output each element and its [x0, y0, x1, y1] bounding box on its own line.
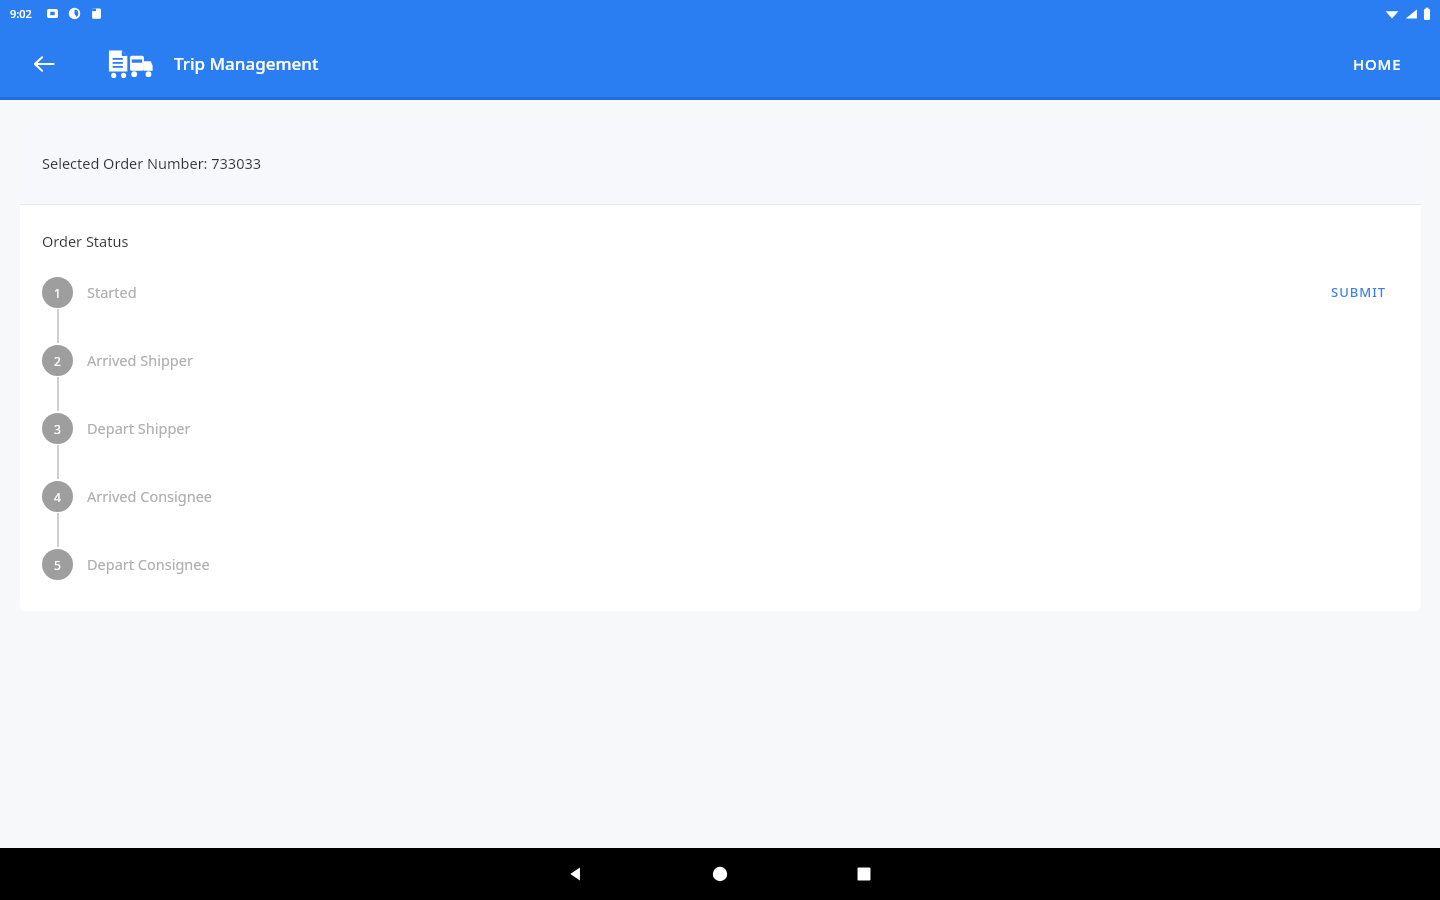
- staticText: 4: [54, 489, 61, 505]
- staticText: Trip Management: [174, 52, 319, 75]
- button[interactable]: Home: [688, 848, 752, 900]
- staticText: 5: [54, 557, 61, 573]
- button[interactable]: SUBMIT: [1321, 277, 1397, 307]
- button[interactable]: HOME: [1343, 46, 1412, 82]
- staticText: Started: [87, 282, 137, 302]
- staticText: Order Status: [42, 231, 129, 251]
- staticText: Arrived Consignee: [87, 486, 213, 506]
- staticText: SUBMIT: [1331, 283, 1387, 301]
- staticText: Selected Order Number: 733033: [42, 153, 262, 173]
- staticText: Depart Consignee: [87, 554, 210, 574]
- button[interactable]: Back: [544, 848, 608, 900]
- staticText: 1: [54, 285, 61, 301]
- staticText: Arrived Shipper: [87, 350, 193, 370]
- staticText: 3: [54, 421, 61, 437]
- staticText: 2: [54, 353, 61, 369]
- button[interactable]: Back: [24, 44, 64, 84]
- button[interactable]: Recent apps: [832, 848, 896, 900]
- staticText: 9:02: [10, 6, 32, 21]
- staticText: Depart Shipper: [87, 418, 191, 438]
- staticText: HOME: [1353, 54, 1402, 74]
